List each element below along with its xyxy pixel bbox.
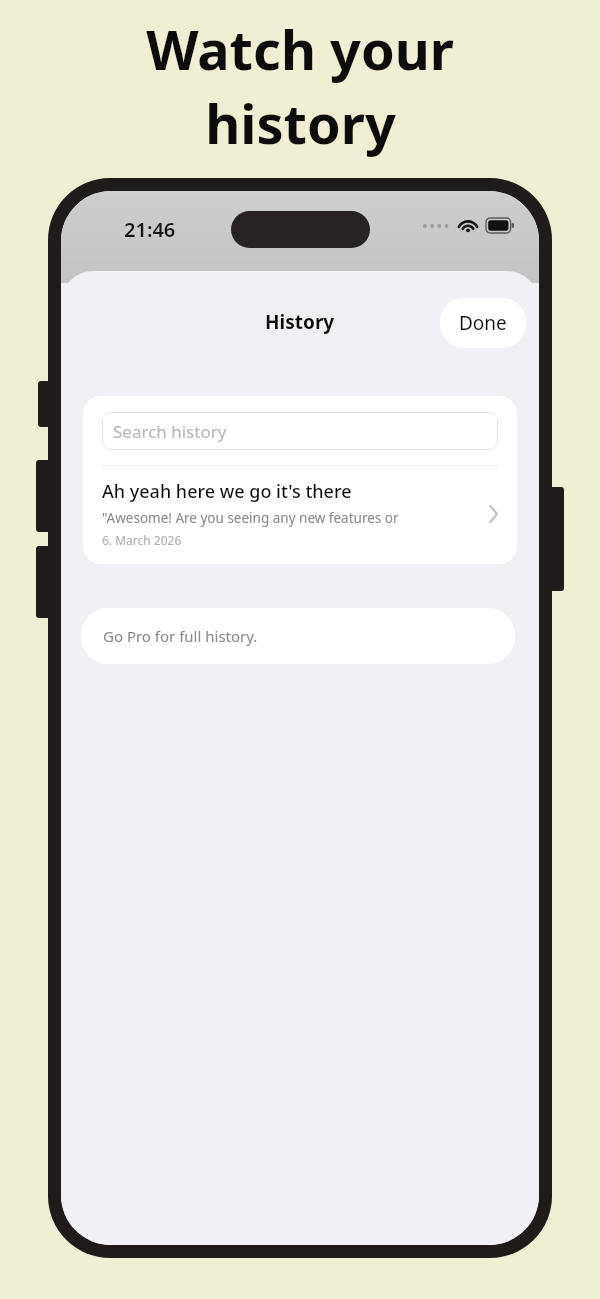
- staticText: History: [265, 309, 335, 335]
- staticText: Go Pro for full history.: [103, 626, 258, 646]
- staticText: Ah yeah here we go it's there: [102, 479, 352, 504]
- staticText: 21:46: [124, 216, 176, 243]
- other: Open entry: [483, 504, 503, 524]
- staticText: 6. March 2026: [102, 532, 182, 548]
- staticText: Watch your: [146, 12, 454, 86]
- button[interactable]: Go Pro for full history.: [81, 608, 515, 664]
- button[interactable]: Ah yeah here we go it's there: [83, 466, 517, 564]
- button[interactable]: Done: [440, 298, 526, 348]
- staticText: history: [205, 86, 396, 160]
- button[interactable]: Search history: [102, 412, 498, 450]
- staticText: "Awesome! Are you seeing any new feature…: [102, 509, 477, 527]
- staticText: Done: [459, 310, 507, 336]
- staticText: Search history: [113, 420, 227, 443]
